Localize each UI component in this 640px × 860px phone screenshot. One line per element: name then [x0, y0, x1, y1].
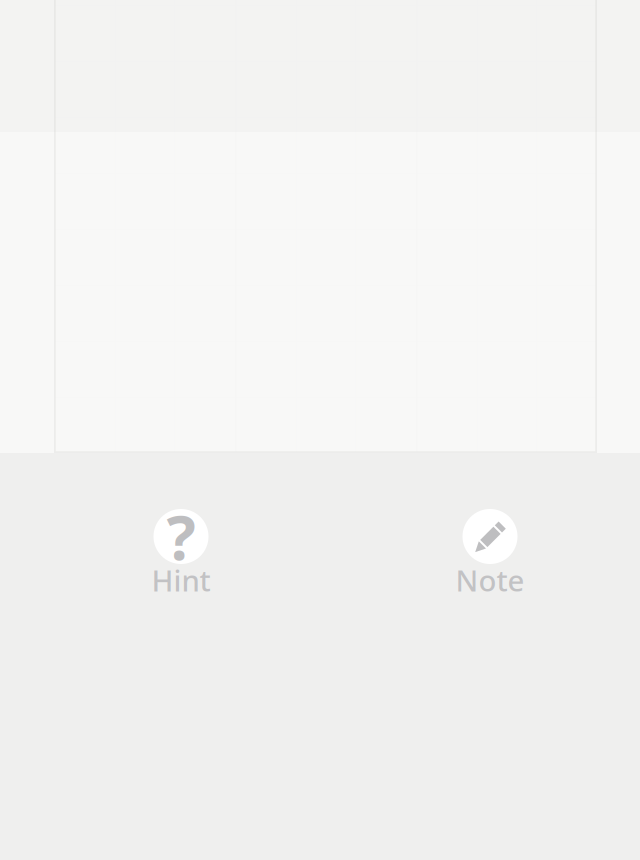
staticText: ? [166, 496, 195, 577]
button[interactable]: ? [121, 509, 241, 596]
button[interactable]: Note [430, 509, 550, 596]
staticText: Note [455, 560, 524, 599]
staticText: Hint [151, 560, 210, 599]
